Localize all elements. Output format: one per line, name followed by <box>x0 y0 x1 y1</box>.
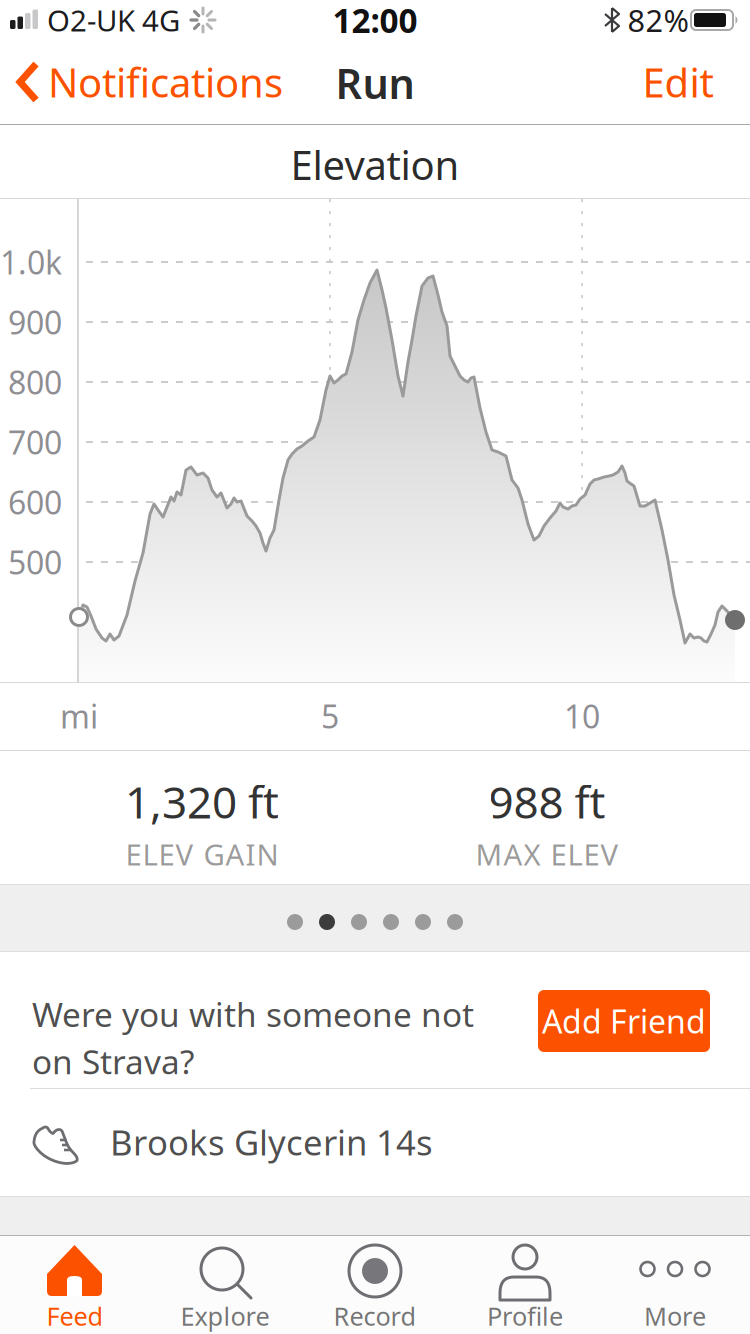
button[interactable]: Explore <box>150 1236 300 1334</box>
button[interactable]: More <box>600 1236 750 1334</box>
button[interactable]: Brooks Glycerin 14s <box>0 1089 750 1196</box>
button[interactable]: Profile <box>450 1236 600 1334</box>
staticText: Run <box>335 56 414 110</box>
button[interactable]: Feed <box>0 1236 150 1334</box>
staticText: on Strava? <box>32 1039 194 1084</box>
staticText: Profile <box>487 1299 563 1333</box>
staticText: 4G <box>142 0 180 39</box>
staticText: mi <box>60 695 98 737</box>
staticText: 1,320 ft <box>125 772 279 831</box>
button[interactable]: Add Friend <box>538 990 710 1052</box>
staticText: Edit <box>642 55 713 108</box>
staticText: ELEV GAIN <box>125 835 278 874</box>
staticText: Brooks Glycerin 14s <box>110 1119 433 1165</box>
staticText: 700 <box>8 421 62 463</box>
staticText: Notifications <box>48 55 283 108</box>
staticText: 10 <box>564 695 600 737</box>
staticText: 1.0k <box>0 241 62 283</box>
staticText: 5 <box>321 695 339 737</box>
staticText: 82% <box>627 0 688 40</box>
staticText: Record <box>333 1299 416 1333</box>
staticText: O2-UK <box>47 0 135 39</box>
staticText: Add Friend <box>542 1000 706 1042</box>
button[interactable]: Back <box>0 40 283 124</box>
button[interactable]: Edit <box>622 40 733 124</box>
staticText: More <box>644 1299 706 1333</box>
staticText: 800 <box>8 361 62 403</box>
staticText: MAX ELEV <box>475 835 618 874</box>
staticText: Explore <box>180 1299 269 1333</box>
staticText: 900 <box>8 301 62 343</box>
staticText: 988 ft <box>488 772 605 831</box>
staticText: 500 <box>8 541 62 583</box>
staticText: Feed <box>46 1299 103 1333</box>
staticText: 600 <box>8 481 62 523</box>
staticText: 12:00 <box>332 0 417 42</box>
staticText: Were you with someone not <box>32 992 474 1036</box>
staticText: Elevation <box>290 138 459 191</box>
button[interactable]: Record <box>300 1236 450 1334</box>
